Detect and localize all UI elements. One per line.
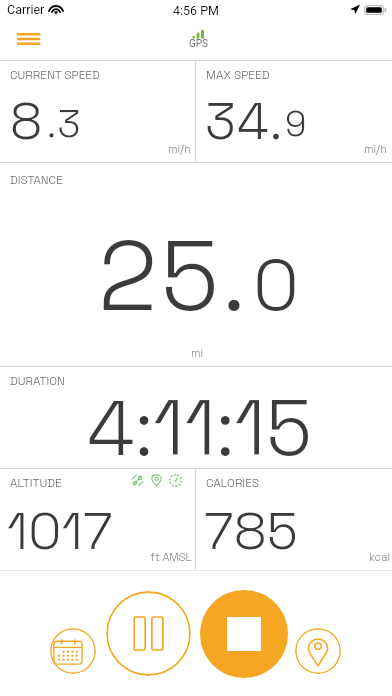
button[interactable]: GPS signal	[181, 25, 211, 51]
staticText: Carrier	[7, 2, 45, 17]
staticText: 1017	[7, 498, 113, 564]
staticText: GPS	[189, 38, 209, 50]
staticText: DISTANCE	[10, 172, 63, 187]
staticText: CURRENT SPEED	[10, 67, 100, 82]
button[interactable]	[196, 469, 392, 570]
staticText: 9	[285, 102, 307, 147]
staticText: CALORIES	[206, 475, 260, 490]
button[interactable]	[0, 367, 392, 468]
button[interactable]: Pause	[106, 591, 191, 676]
staticText: ALTITUDE	[10, 475, 62, 490]
staticText: 785	[204, 498, 299, 564]
button[interactable]	[0, 61, 195, 162]
button[interactable]: Menu	[12, 26, 45, 52]
staticText: 34.	[205, 89, 284, 154]
button[interactable]: Map	[295, 628, 341, 674]
staticText: 25.	[98, 214, 249, 339]
staticText: 0	[253, 239, 299, 331]
button[interactable]	[0, 469, 195, 570]
staticText: ft AMSL	[150, 550, 192, 564]
staticText: mi	[191, 346, 204, 360]
staticText: mi/h	[364, 142, 387, 156]
button[interactable]: History	[50, 628, 96, 674]
staticText: 8	[10, 89, 43, 154]
button[interactable]	[0, 163, 392, 366]
button[interactable]	[196, 61, 392, 162]
staticText: MAX SPEED	[206, 67, 270, 82]
staticText: 4:11:15	[87, 379, 313, 477]
staticText: kcal	[369, 550, 391, 564]
staticText: 4:56 PM	[173, 3, 220, 18]
staticText: mi/h	[168, 142, 191, 156]
staticText: .3	[47, 100, 83, 148]
staticText: DURATION	[10, 373, 65, 388]
button[interactable]: Stop	[200, 590, 288, 678]
